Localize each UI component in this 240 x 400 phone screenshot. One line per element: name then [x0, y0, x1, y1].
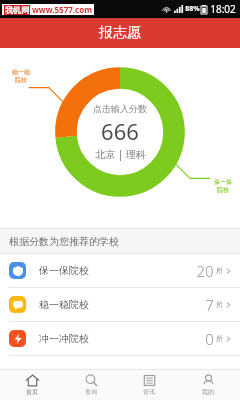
staticText: 报志愿	[99, 24, 141, 42]
staticText: 所	[216, 334, 223, 343]
staticText: 稳一稳	[12, 68, 30, 76]
staticText: 首页	[26, 388, 38, 396]
staticText: 北京 | 理科	[95, 147, 146, 161]
button[interactable]: 我的	[182, 374, 234, 396]
staticText: 资讯	[143, 388, 155, 396]
button[interactable]: 保一保院校	[0, 254, 240, 288]
staticText: 20	[196, 261, 214, 281]
staticText: 保一保	[214, 178, 232, 186]
staticText: 0	[205, 329, 214, 349]
button[interactable]: 资讯	[123, 374, 175, 396]
staticText: 18:02	[210, 2, 236, 16]
button[interactable]: 首页	[6, 374, 58, 396]
staticText: 88%	[185, 4, 200, 14]
staticText: 冲一冲院校	[39, 332, 89, 345]
staticText: www.5577.com	[32, 4, 92, 15]
staticText: 查询	[85, 388, 97, 396]
staticText: 稳一稳院校	[39, 298, 89, 311]
staticText: 我的	[202, 388, 214, 396]
staticText: 7	[205, 295, 214, 315]
staticText: 院校	[217, 186, 229, 194]
staticText: 所	[216, 266, 223, 275]
staticText: 根据分数为您推荐的学校	[9, 235, 119, 248]
staticText: 所	[216, 300, 223, 309]
staticText: 666	[101, 116, 139, 146]
button[interactable]: 查询	[65, 374, 117, 396]
button[interactable]: 冲一冲院校	[0, 322, 240, 356]
staticText: 点击输入分数	[93, 103, 147, 114]
staticText: 院校	[15, 76, 27, 84]
staticText: 保一保院校	[39, 264, 89, 277]
staticText: 我机网	[5, 5, 29, 15]
button[interactable]: 稳一稳院校	[0, 288, 240, 322]
